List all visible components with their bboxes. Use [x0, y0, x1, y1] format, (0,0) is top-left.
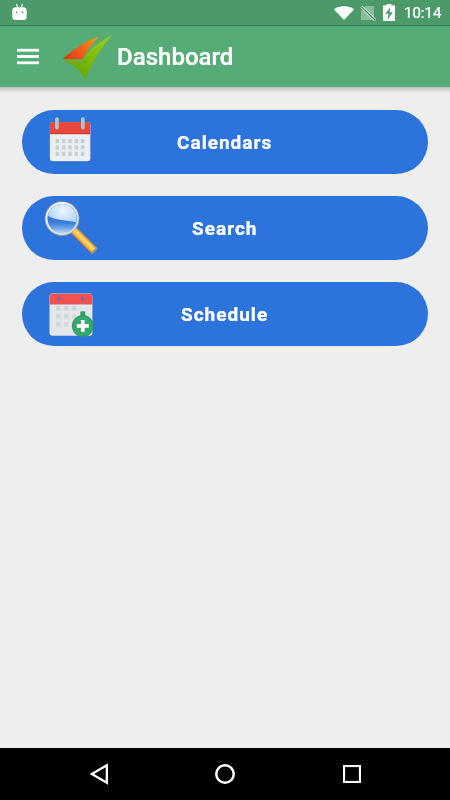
- button[interactable]: Calendars: [22, 110, 428, 174]
- button[interactable]: Search: [22, 196, 428, 260]
- button[interactable]: Home: [189, 748, 261, 800]
- button[interactable]: Schedule: [22, 282, 428, 346]
- staticText: Dashboard: [117, 43, 234, 71]
- staticText: 10:14: [404, 4, 442, 22]
- staticText: Calendars: [177, 131, 273, 153]
- staticText: Schedule: [181, 303, 269, 325]
- button[interactable]: Recent apps: [316, 748, 388, 800]
- staticText: Search: [192, 217, 258, 239]
- button[interactable]: Open navigation drawer: [0, 26, 56, 87]
- button[interactable]: Back: [63, 748, 135, 800]
